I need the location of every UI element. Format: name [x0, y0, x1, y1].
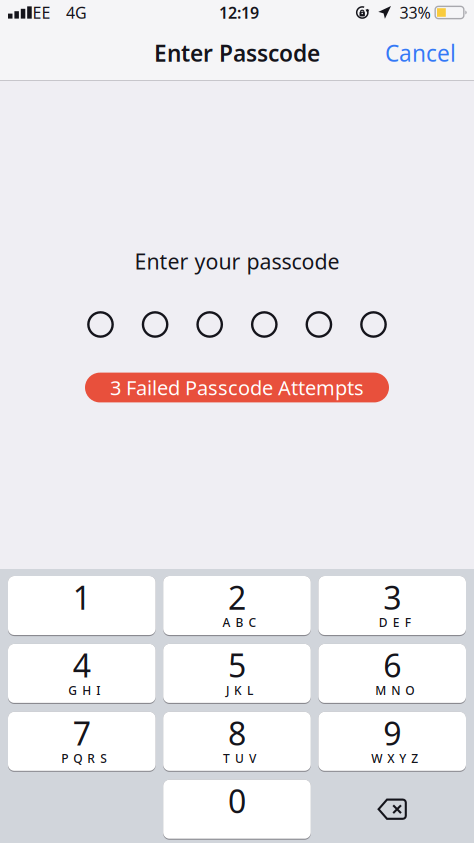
button[interactable]: Cancel [375, 29, 466, 77]
staticText: 9 [383, 712, 401, 754]
staticText: 33% [399, 2, 430, 23]
button[interactable]: 8 [163, 712, 311, 771]
staticText: 4 [73, 644, 91, 686]
staticText: 8 [228, 712, 246, 754]
staticText: 5 [228, 644, 246, 686]
staticText: 2 [228, 576, 246, 618]
button[interactable]: 9 [318, 712, 466, 771]
staticText: EE [32, 2, 50, 23]
button[interactable]: Delete [318, 780, 466, 839]
staticText: 6 [383, 644, 401, 686]
staticText: Enter Passcode [154, 38, 320, 68]
button[interactable]: 0 [163, 780, 311, 839]
button[interactable]: 5 [163, 644, 311, 703]
staticText: 3 Failed Passcode Attempts [110, 374, 364, 401]
button[interactable]: 3 [318, 576, 466, 635]
staticText: GHI [68, 682, 100, 698]
staticText: DEF [379, 614, 411, 630]
staticText: TUV [223, 750, 256, 766]
staticText: 4G [66, 2, 87, 23]
button[interactable]: 7 [8, 712, 156, 771]
staticText: PQRS [61, 750, 107, 766]
button[interactable]: 2 [163, 576, 311, 635]
staticText: Enter your passcode [134, 247, 339, 275]
staticText: JKL [226, 682, 253, 698]
staticText: 7 [73, 712, 91, 754]
staticText: WXYZ [371, 750, 418, 766]
button[interactable]: 1 [8, 576, 156, 635]
staticText: Cancel [385, 38, 456, 68]
staticText: 3 [383, 576, 401, 618]
staticText: ABC [222, 614, 256, 630]
staticText: MNO [375, 682, 414, 698]
staticText: 12:19 [219, 2, 259, 23]
staticText: 0 [228, 780, 246, 822]
button[interactable]: 6 [318, 644, 466, 703]
button[interactable]: 4 [8, 644, 156, 703]
staticText: 1 [73, 576, 91, 618]
